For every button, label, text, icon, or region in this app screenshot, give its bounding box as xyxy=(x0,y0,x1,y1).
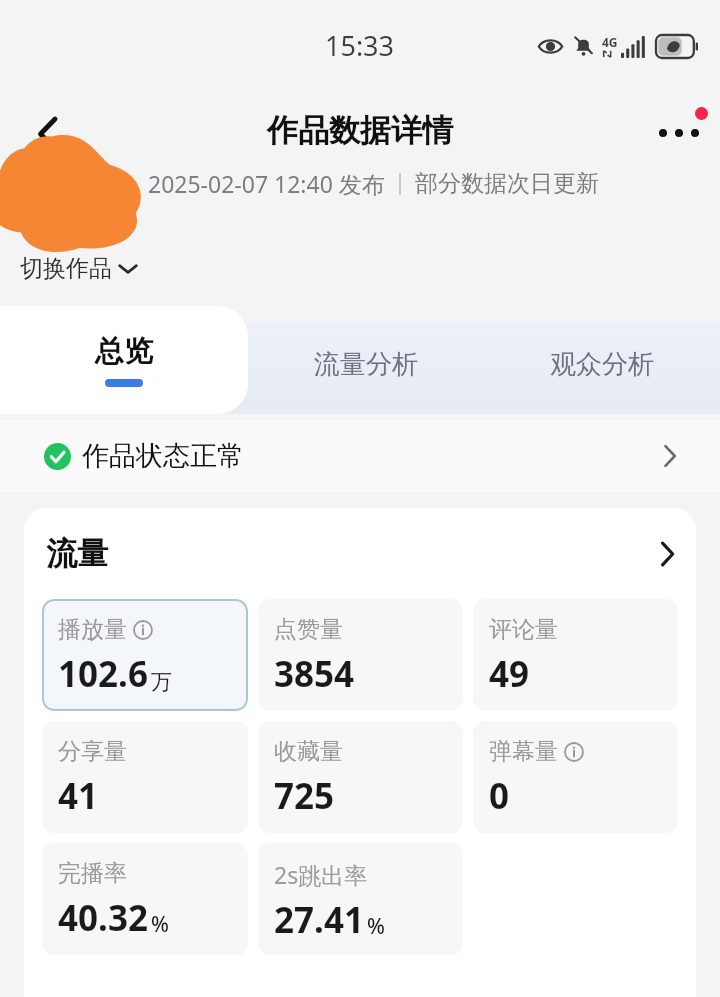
button[interactable]: 流量分析 xyxy=(248,306,484,414)
staticText: 评论量 xyxy=(489,615,558,644)
button[interactable]: 作品状态正常 xyxy=(0,420,720,492)
staticText: 部分数据次日更新 xyxy=(415,169,599,198)
staticText: 播放量 xyxy=(58,615,127,644)
staticText: 3854 xyxy=(274,650,355,698)
staticText: 完播率 xyxy=(58,859,127,888)
staticText: 作品数据详情 xyxy=(267,111,453,150)
button[interactable]: 切换作品 xyxy=(20,254,138,283)
button[interactable]: 总览 xyxy=(0,306,248,414)
staticText: 流量分析 xyxy=(314,348,418,381)
button[interactable]: 完播率 xyxy=(42,843,248,955)
button[interactable]: 观众分析 xyxy=(484,306,720,414)
staticText: 万 xyxy=(151,669,172,695)
staticText: 总览 xyxy=(95,333,153,370)
staticText: 41 xyxy=(58,772,99,820)
button[interactable]: 流量 xyxy=(46,534,674,573)
staticText: 27.41 xyxy=(274,896,364,944)
staticText: 分享量 xyxy=(58,737,127,766)
button[interactable]: 2s跳出率 xyxy=(258,843,463,955)
staticText: 40.32 xyxy=(58,894,148,942)
staticText: 2025-02-07 12:40 发布 xyxy=(148,168,385,199)
button[interactable]: 弹幕量 xyxy=(473,721,678,833)
staticText: 流量 xyxy=(46,534,108,573)
staticText: % xyxy=(367,912,385,941)
button[interactable]: 点赞量 xyxy=(258,599,463,711)
button[interactable]: Back xyxy=(20,106,76,162)
staticText: 观众分析 xyxy=(550,348,654,381)
staticText: 15:33 xyxy=(325,27,395,64)
button[interactable]: 分享量 xyxy=(42,721,248,833)
button[interactable]: More options xyxy=(648,102,710,164)
staticText: % xyxy=(151,910,169,939)
staticText: 2s跳出率 xyxy=(274,859,368,890)
button[interactable]: 评论量 xyxy=(473,599,678,711)
button[interactable]: 播放量 xyxy=(42,599,248,711)
staticText: 点赞量 xyxy=(274,615,343,644)
staticText: 725 xyxy=(274,772,335,820)
staticText: 49 xyxy=(489,650,530,698)
staticText: 切换作品 xyxy=(20,254,112,283)
staticText: 102.6 xyxy=(58,650,148,698)
button[interactable]: 收藏量 xyxy=(258,721,463,833)
staticText: 0 xyxy=(489,772,510,820)
staticText: 收藏量 xyxy=(274,737,343,766)
staticText: 作品状态正常 xyxy=(82,439,244,473)
staticText: 4G xyxy=(602,34,618,50)
staticText: 弹幕量 xyxy=(489,737,558,766)
